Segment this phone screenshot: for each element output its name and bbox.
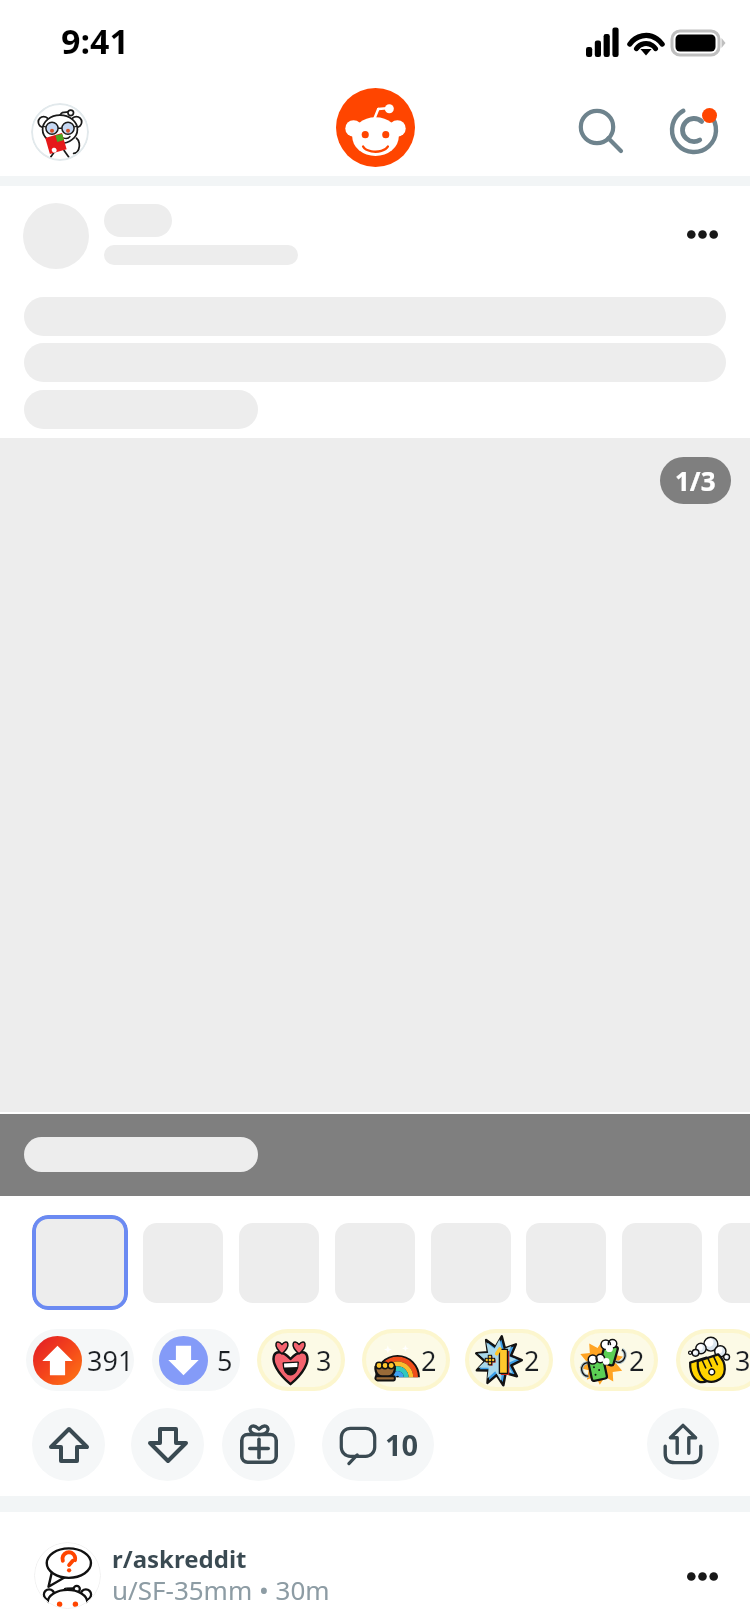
button[interactable]: 3 (680, 1333, 750, 1387)
button[interactable]: 2 (366, 1333, 446, 1387)
button[interactable]: 5 (152, 1329, 240, 1391)
button[interactable]: More options (674, 1548, 730, 1604)
button[interactable]: Upvote (32, 1408, 105, 1481)
button[interactable]: 391 (26, 1329, 134, 1391)
button[interactable]: Downvote (131, 1408, 204, 1481)
staticText: 2 (421, 1342, 437, 1379)
staticText: 391 (87, 1342, 134, 1379)
button[interactable]: 3 (261, 1333, 341, 1387)
button[interactable]: 2 (574, 1333, 654, 1387)
button[interactable]: Share (647, 1408, 719, 1480)
button[interactable]: 10 (322, 1408, 434, 1481)
button[interactable]: r/askreddit (0, 1512, 750, 1624)
staticText: 10 (385, 1425, 419, 1464)
button[interactable]: More options (674, 206, 730, 262)
button[interactable]: Search (569, 99, 629, 159)
button[interactable]: 2 (469, 1333, 549, 1387)
staticText: 3 (316, 1342, 332, 1379)
staticText: u/SF-35mm • 30m (112, 1572, 330, 1607)
button[interactable]: Image 8 (718, 1223, 750, 1303)
staticText: 5 (217, 1342, 233, 1379)
button[interactable]: Image 1 (32, 1215, 128, 1310)
staticText: 3 (735, 1342, 750, 1379)
button[interactable]: Profile (31, 103, 89, 161)
staticText: r/askreddit (112, 1542, 247, 1575)
staticText: 2 (629, 1342, 645, 1379)
button[interactable]: Reddit home (336, 88, 415, 167)
button[interactable]: Award (222, 1408, 295, 1481)
staticText: 1/3 (675, 463, 716, 498)
staticText: 2 (524, 1342, 540, 1379)
staticText: 9:41 (61, 18, 129, 64)
button[interactable]: Chat (664, 100, 724, 160)
